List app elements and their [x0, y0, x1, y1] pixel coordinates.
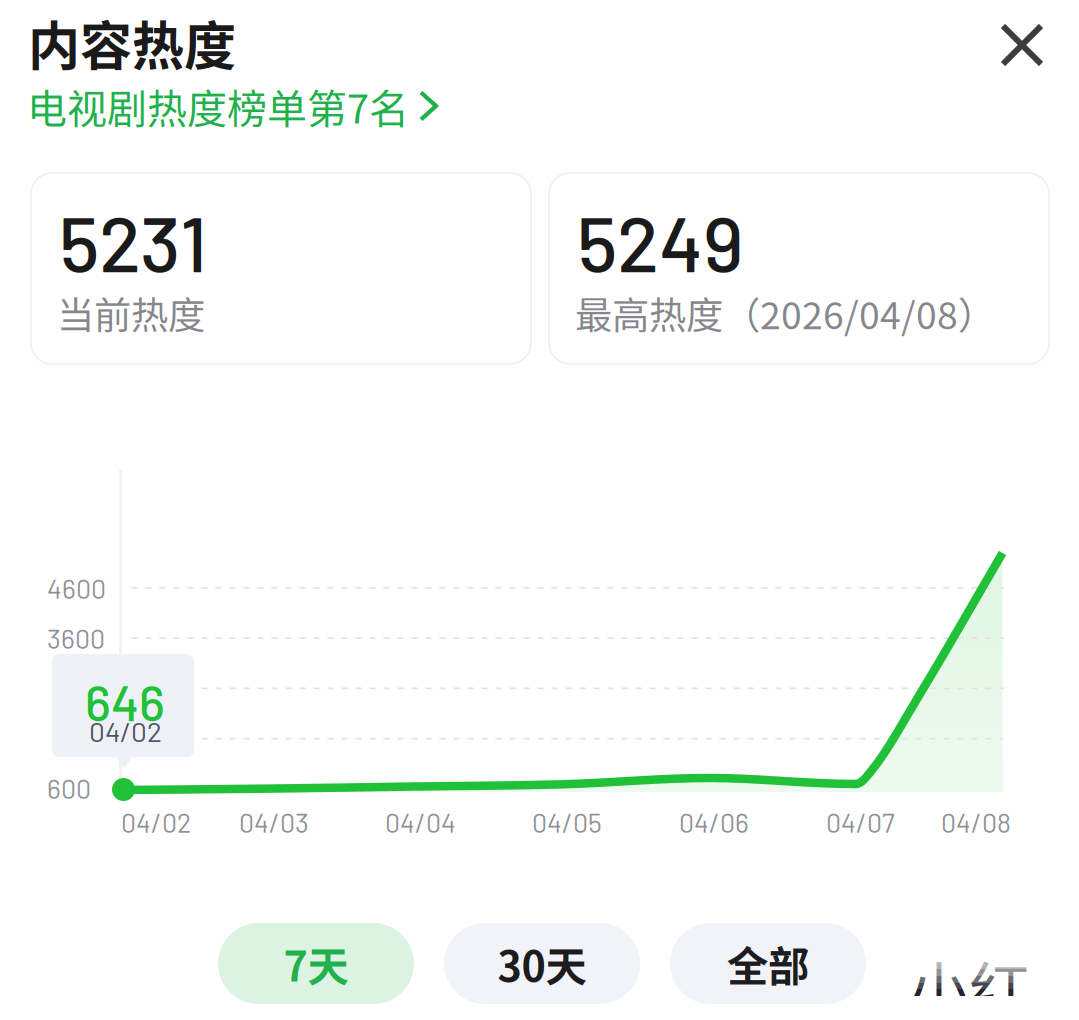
staticText: 全部 — [727, 934, 809, 993]
staticText: 04/02 — [89, 714, 162, 748]
staticText: 04/03 — [239, 806, 309, 838]
staticText: 当前热度 — [57, 286, 205, 340]
staticText: 5249 — [577, 195, 744, 288]
staticText: 最高热度（2026/04/08） — [575, 286, 995, 340]
staticText: 小红书 — [908, 942, 1030, 1020]
staticText: 3600 — [47, 622, 105, 654]
staticText: 04/04 — [385, 806, 456, 838]
button[interactable]: 7天 — [218, 923, 414, 1004]
staticText: 600 — [47, 772, 91, 804]
staticText: 4600 — [47, 572, 106, 604]
button[interactable]: 30天 — [444, 923, 640, 1004]
staticText: 电视剧热度榜单第7名 — [27, 77, 409, 135]
staticText: 04/05 — [532, 806, 602, 838]
staticText: 04/07 — [826, 806, 895, 838]
staticText: 7天 — [283, 934, 348, 993]
staticText: 646 — [85, 672, 165, 731]
staticText: 30天 — [497, 934, 586, 993]
button[interactable]: 电视剧热度榜单第7名 — [27, 77, 436, 135]
staticText: 04/06 — [679, 806, 749, 838]
button[interactable]: Close — [991, 14, 1053, 76]
staticText: 04/02 — [121, 806, 191, 838]
staticText: 04/08 — [941, 806, 1011, 838]
staticText: 5231 — [59, 195, 207, 288]
staticText: 内容热度 — [28, 5, 236, 80]
button[interactable]: 全部 — [670, 923, 866, 1004]
